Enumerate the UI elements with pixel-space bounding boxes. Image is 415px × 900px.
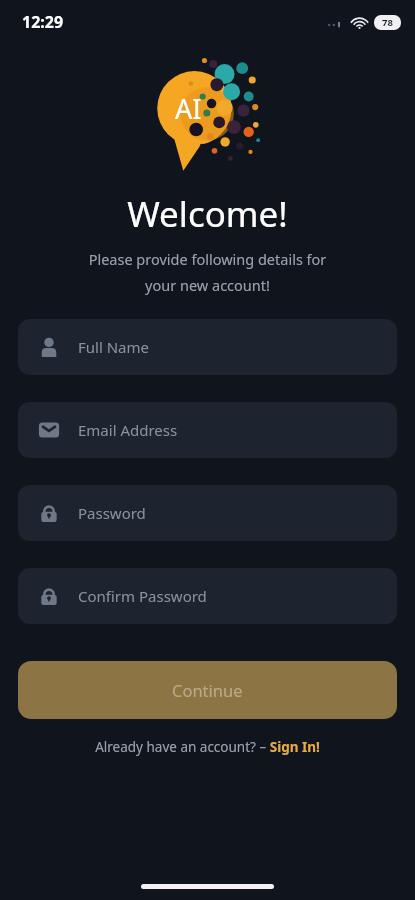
button[interactable]: Password [18,485,397,541]
staticText: 78 [382,16,393,29]
button[interactable]: Email Address [18,402,397,458]
staticText: Already have an account? – Sign In! [95,738,320,756]
staticText: 12:29 [22,11,64,33]
staticText: Password [78,503,146,523]
staticText: Please provide following details for you… [40,249,375,295]
button[interactable]: Full Name [18,319,397,375]
staticText: Email Address [78,420,178,440]
staticText: Confirm Password [78,586,207,606]
staticText: Continue [172,679,243,701]
staticText: Welcome! [0,190,415,238]
button[interactable]: Continue [18,661,397,719]
staticText: Full Name [78,337,149,357]
button[interactable]: Already have an account? – Sign In! [0,738,415,756]
button[interactable]: Confirm Password [18,568,397,624]
staticText: AI [175,90,202,127]
